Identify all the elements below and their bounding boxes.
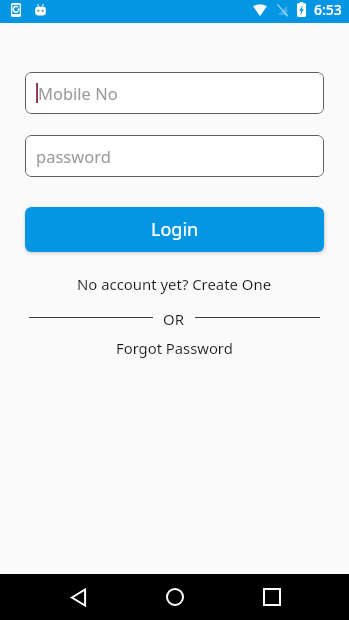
staticText: Login [151,217,199,242]
staticText: password [36,145,111,167]
staticText: OR [163,309,185,325]
staticText: Mobile No [38,82,118,104]
button[interactable]: Forgot Password [116,338,233,358]
button[interactable]: Login [25,207,324,252]
button[interactable]: Home [151,574,199,620]
button[interactable]: password [25,135,324,177]
button[interactable]: Back [54,574,102,620]
button[interactable]: Recents [248,574,296,620]
button[interactable]: No account yet? Create One [77,274,272,294]
staticText: 6:53 [314,0,342,19]
button[interactable]: Mobile No [25,72,324,114]
